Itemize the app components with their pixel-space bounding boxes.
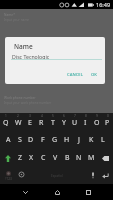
staticText: J [78,135,80,145]
staticText: C [41,153,46,163]
button[interactable]: C [37,149,49,167]
staticText: P [105,118,110,128]
staticText: 1 [5,114,7,118]
button[interactable]: H [61,131,73,149]
staticText: 5 [52,114,54,118]
staticText: Name* [4,13,15,17]
staticText: 7 [74,114,76,118]
button[interactable]: M [85,149,97,167]
button[interactable]: X [26,149,37,167]
button[interactable]: A [3,131,14,149]
staticText: 2 [17,114,19,118]
staticText: S [18,135,22,145]
staticText: 3 [29,114,31,118]
staticText: 9 [96,114,98,118]
button[interactable]: Backspace [97,149,113,167]
button[interactable]: 9 [91,113,102,131]
staticText: OK [91,72,97,78]
staticText: A [6,135,11,145]
button[interactable]: N [73,149,85,167]
staticText: O [94,118,100,128]
button[interactable]: V [49,149,61,167]
staticText: K [89,135,94,145]
staticText: Español [51,174,63,178]
staticText: Work phone number [4,96,36,100]
staticText: Input your name [4,18,30,22]
staticText: F [41,135,45,145]
staticText: X [29,153,34,163]
staticText: 4 [41,114,43,118]
button[interactable]: 8 [80,113,91,131]
staticText: R [39,118,44,128]
staticText: Y [62,118,66,128]
button[interactable]: Home [50,185,64,199]
staticText: 16:49 [96,1,111,8]
button[interactable]: Back [18,185,32,199]
staticText: D [28,135,34,145]
staticText: 0 [107,114,109,118]
staticText: L [101,135,105,145]
button[interactable]: Recents [81,185,95,199]
staticText: I [84,118,87,128]
staticText: W [15,118,22,128]
button[interactable]: OK [89,70,99,80]
button[interactable]: 0 [102,113,113,131]
button[interactable]: 5 [47,113,58,131]
button[interactable]: J [73,131,85,149]
button[interactable]: Symbols [0,167,16,184]
staticText: ?123 [5,177,12,181]
button[interactable]: 3 [24,113,36,131]
button[interactable]: G [49,131,61,149]
staticText: V [53,153,58,163]
staticText: H [64,135,70,145]
button[interactable]: 6 [58,113,69,131]
button[interactable]: Z [15,149,26,167]
button[interactable]: 1 [0,113,12,131]
button[interactable]: Shift [0,149,15,167]
staticText: Name [14,42,33,51]
button[interactable]: F [37,131,49,149]
button[interactable]: Emoji [16,167,27,184]
staticText: 6 [63,114,65,118]
button[interactable]: 2 [12,113,24,131]
staticText: E [28,118,32,128]
button[interactable]: Voice input [87,167,98,184]
button[interactable]: L [97,131,109,149]
staticText: Input your work phone number [4,101,52,105]
staticText: M [88,153,95,163]
staticText: CANCEL [67,72,83,78]
button[interactable]: CANCEL [65,70,85,80]
button[interactable]: 7 [69,113,80,131]
button[interactable]: B [61,149,73,167]
staticText: Q [3,118,9,128]
staticText: B [65,153,70,163]
staticText: 8 [85,114,87,118]
staticText: Disc Tecnologic [12,53,50,60]
staticText: N [76,153,82,163]
button[interactable]: D [25,131,37,149]
staticText: Z [18,153,23,163]
button[interactable]: Enter [98,167,113,184]
staticText: G [52,135,58,145]
button[interactable]: K [85,131,97,149]
staticText: U [72,118,78,128]
staticText: T [51,118,55,128]
button[interactable]: S [14,131,25,149]
button[interactable]: 4 [36,113,47,131]
